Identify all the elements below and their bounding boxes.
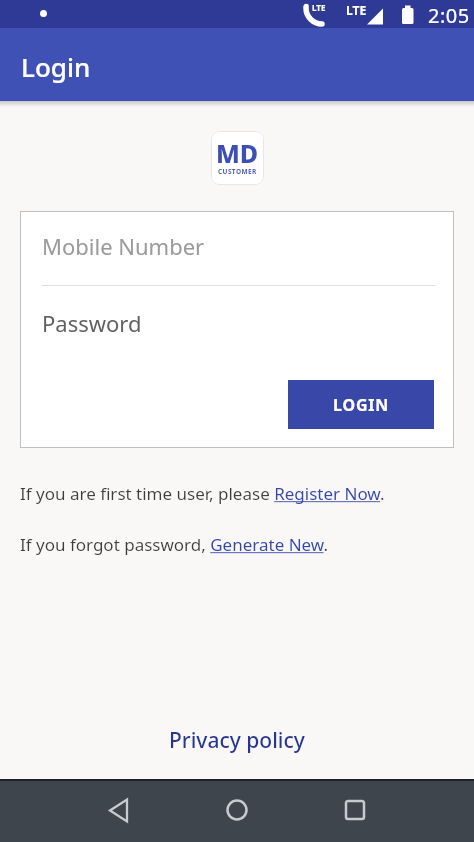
staticText: If you forgot password, Generate New. — [20, 533, 329, 556]
button[interactable]: If you forgot password, Generate New. — [20, 533, 329, 556]
button[interactable]: LOGIN — [288, 380, 434, 429]
staticText: MD — [216, 136, 259, 170]
staticText: 2:05 — [428, 2, 470, 29]
staticText: Password — [42, 308, 142, 338]
button[interactable]: Password — [20, 308, 454, 338]
staticText: Mobile Number — [42, 231, 205, 261]
button[interactable]: If you are first time user, please Regis… — [20, 482, 385, 505]
staticText: LTE — [312, 2, 326, 13]
staticText: LOGIN — [333, 394, 390, 416]
button[interactable]: Mobile Number — [20, 231, 454, 261]
staticText: CUSTOMER — [218, 167, 257, 176]
staticText: Privacy policy — [169, 726, 305, 755]
button[interactable] — [217, 790, 257, 830]
staticText: LTE — [346, 2, 367, 18]
button[interactable] — [98, 790, 138, 830]
staticText: If you are first time user, please Regis… — [20, 482, 385, 505]
button[interactable] — [335, 790, 375, 830]
staticText: Login — [21, 49, 91, 84]
button[interactable]: Privacy policy — [169, 726, 305, 755]
